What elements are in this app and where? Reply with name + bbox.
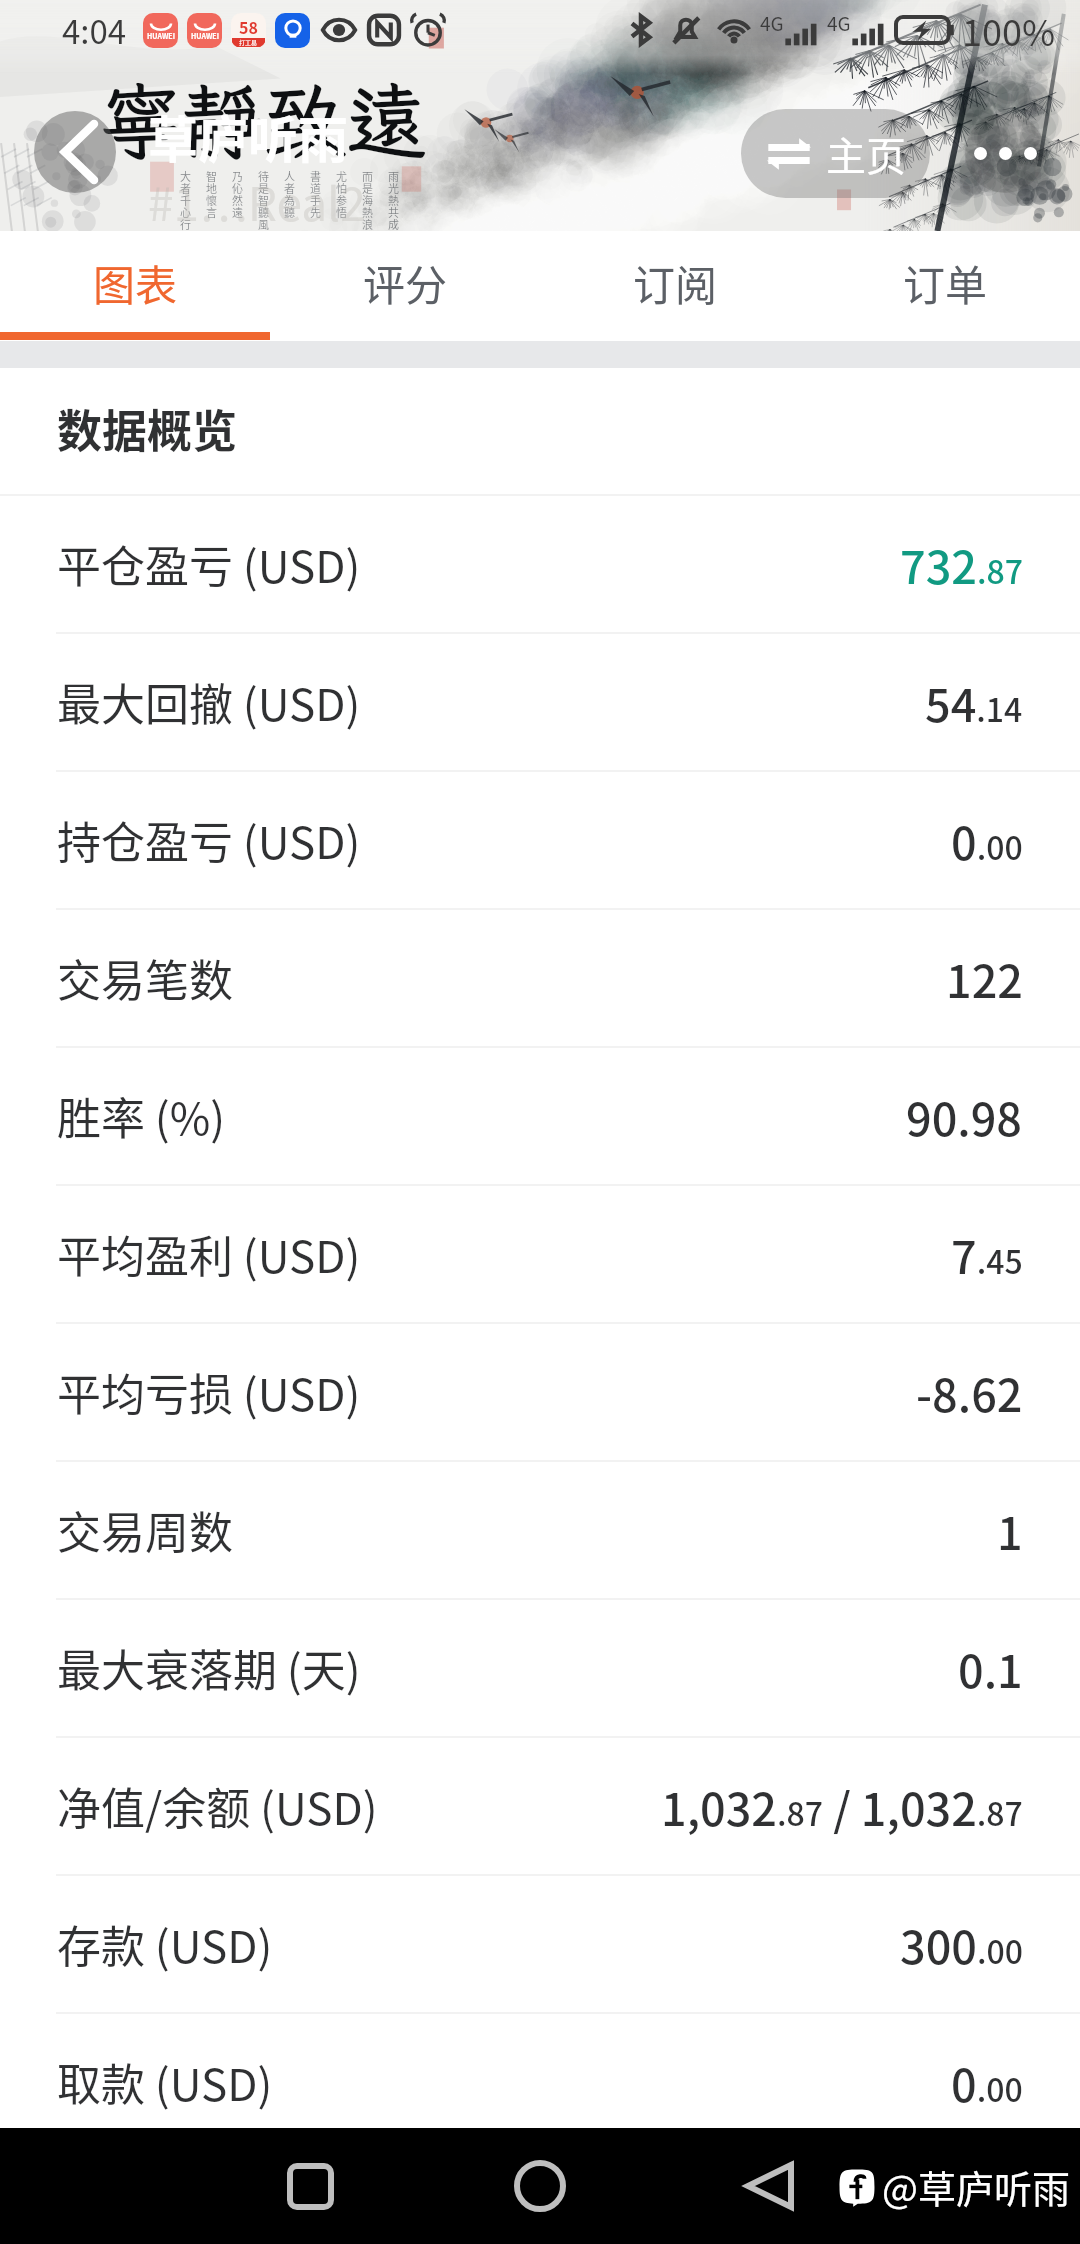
button[interactable]: 订单: [810, 231, 1080, 333]
button[interactable]: 胜率 (%): [0, 1048, 1080, 1184]
staticText: 732.87: [900, 532, 1023, 597]
button[interactable]: 平仓盈亏 (USD): [0, 496, 1080, 632]
staticText: 4G: [760, 9, 784, 37]
button[interactable]: 图表: [0, 231, 270, 333]
button[interactable]: 最大衰落期 (天): [0, 1600, 1080, 1736]
button[interactable]: 净值/余额 (USD): [0, 1738, 1080, 1874]
staticText: 待是智聽風: [258, 168, 269, 232]
button[interactable]: 最大回撤 (USD): [0, 634, 1080, 770]
staticText: 4G: [827, 9, 851, 37]
button[interactable]: 持仓盈亏 (USD): [0, 772, 1080, 908]
staticText: 主页: [826, 125, 906, 183]
staticText: 最大回撤 (USD): [57, 670, 361, 734]
button[interactable]: Home: [482, 2128, 598, 2244]
button[interactable]: 评分: [270, 231, 540, 333]
staticText: -8.62: [916, 1360, 1023, 1425]
staticText: 图表: [93, 252, 178, 313]
staticText: 而是海熱浪: [362, 168, 373, 232]
button[interactable]: 交易周数: [0, 1462, 1080, 1598]
staticText: 智地懷言: [206, 168, 217, 220]
button[interactable]: 取款 (USD): [0, 2014, 1080, 2150]
staticText: 数据概览: [57, 396, 238, 461]
button[interactable]: Recent apps: [252, 2128, 368, 2244]
staticText: 90.98: [906, 1084, 1023, 1149]
staticText: 122: [946, 946, 1023, 1011]
staticText: 0.00: [951, 2050, 1023, 2115]
staticText: 300.00: [900, 1912, 1023, 1977]
button[interactable]: Back: [34, 111, 116, 193]
staticText: 0.1: [958, 1636, 1023, 1701]
staticText: 取款 (USD): [57, 2050, 273, 2114]
staticText: 订单: [903, 252, 988, 313]
staticText: 大者千心行: [180, 168, 191, 232]
staticText: 草庐听雨: [148, 100, 348, 172]
staticText: 订阅: [633, 252, 718, 313]
staticText: 100%: [962, 4, 1056, 56]
staticText: #1…Real2: [148, 168, 366, 235]
staticText: 净值/余额 (USD): [57, 1774, 378, 1838]
button[interactable]: 交易笔数: [0, 910, 1080, 1046]
staticText: 乃伈然遠: [232, 168, 243, 220]
staticText: 交易周数: [57, 1498, 233, 1562]
button[interactable]: Back: [712, 2128, 828, 2244]
staticText: 7.45: [951, 1222, 1023, 1287]
staticText: 58: [239, 15, 258, 38]
staticText: 平仓盈亏 (USD): [57, 532, 361, 596]
staticText: 最大衰落期 (天): [57, 1636, 361, 1700]
staticText: 書道手先: [310, 168, 321, 220]
staticText: 雨光熱共成: [388, 168, 399, 232]
staticText: 寧靜致遠: [100, 66, 429, 174]
staticText: 打工易: [239, 38, 258, 47]
staticText: 交易笔数: [57, 946, 233, 1010]
staticText: 平均盈利 (USD): [57, 1222, 361, 1286]
staticText: 4:04: [62, 6, 127, 54]
staticText: 1,032.87 / 1,032.87: [661, 1774, 1023, 1839]
staticText: 评分: [363, 252, 448, 313]
staticText: 持仓盈亏 (USD): [57, 808, 361, 872]
staticText: HUAWEI: [191, 31, 219, 41]
staticText: 人者為聽: [284, 168, 295, 220]
staticText: 0.00: [951, 808, 1023, 873]
staticText: HUAWEI: [147, 31, 175, 41]
button[interactable]: 平均盈利 (USD): [0, 1186, 1080, 1322]
staticText: 存款 (USD): [57, 1912, 273, 1976]
staticText: 1: [997, 1498, 1023, 1563]
staticText: 54.14: [925, 670, 1023, 735]
button[interactable]: 存款 (USD): [0, 1876, 1080, 2012]
button[interactable]: 主页: [741, 109, 930, 198]
staticText: @草庐听雨: [882, 2159, 1070, 2214]
button[interactable]: 订阅: [540, 231, 810, 333]
staticText: 尤怕参悟: [336, 168, 347, 220]
staticText: 胜率 (%): [57, 1084, 226, 1148]
button[interactable]: More options: [965, 113, 1045, 193]
staticText: 平均亏损 (USD): [57, 1360, 361, 1424]
button[interactable]: 平均亏损 (USD): [0, 1324, 1080, 1460]
